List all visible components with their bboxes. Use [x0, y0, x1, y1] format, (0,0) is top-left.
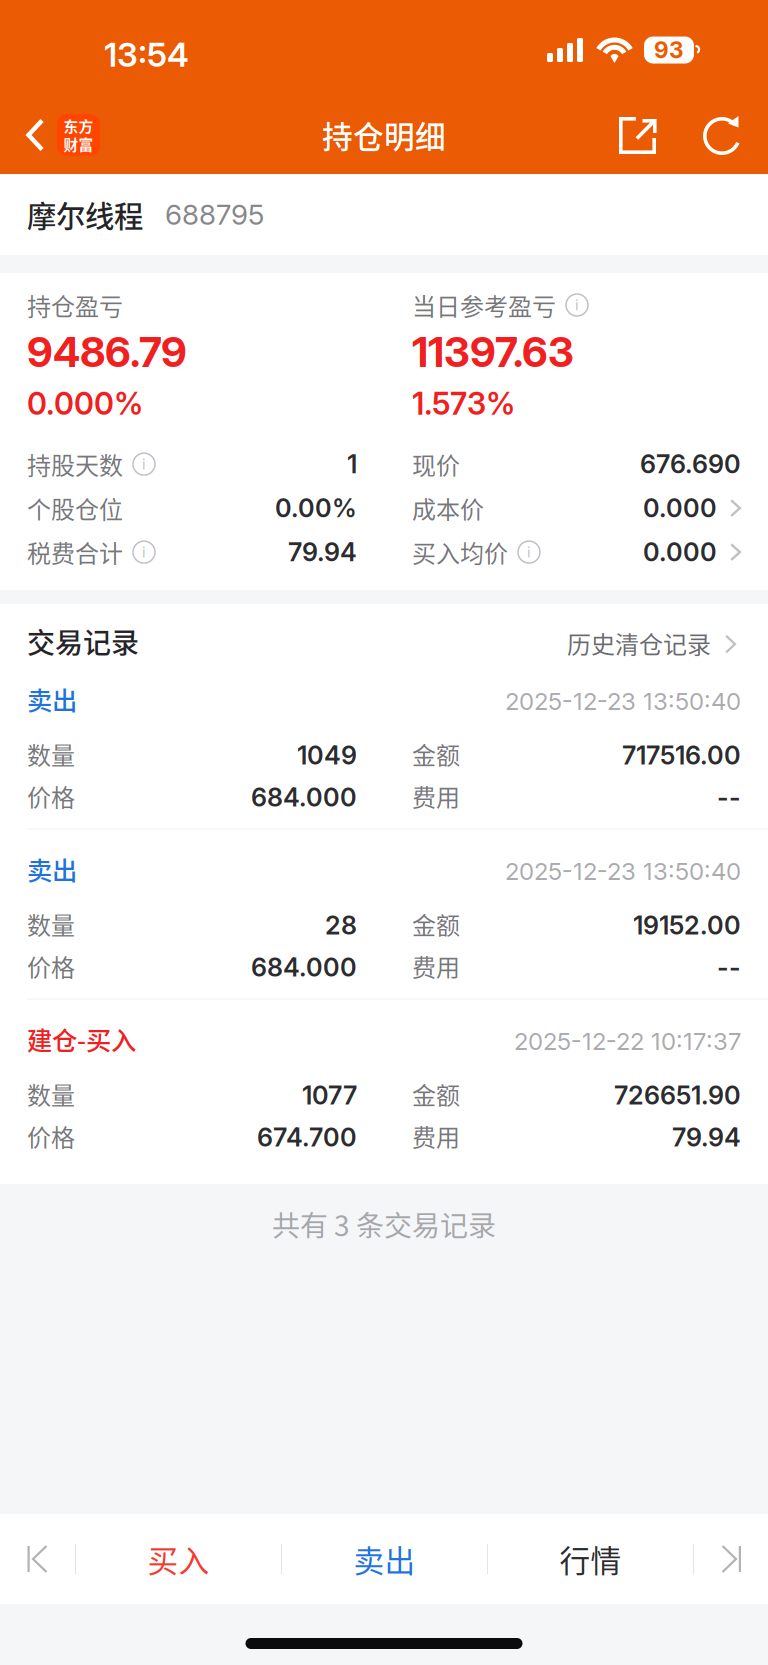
staticText: 行情: [559, 1537, 621, 1581]
staticText: 717516.00: [622, 740, 741, 771]
staticText: 684.000: [251, 952, 357, 983]
staticText: 2025-12-22 10:17:37: [514, 1027, 741, 1056]
button[interactable]: 历史清仓记录: [567, 626, 741, 661]
staticText: 买入均价: [412, 535, 508, 569]
staticText: 684.000: [251, 782, 357, 813]
staticText: 卖出: [27, 681, 77, 717]
staticText: 1: [347, 449, 357, 479]
button[interactable]: 下一只: [694, 1514, 767, 1604]
button[interactable]: 上一只: [1, 1514, 75, 1604]
staticText: 金额: [412, 907, 460, 941]
staticText: 688795: [165, 198, 264, 231]
staticText: 数量: [27, 1077, 75, 1111]
staticText: 个股仓位: [27, 491, 123, 525]
staticText: 79.94: [288, 537, 357, 567]
button[interactable]: 返回: [0, 96, 100, 174]
staticText: 历史清仓记录: [567, 626, 711, 661]
staticText: 726651.90: [614, 1080, 741, 1111]
staticText: 1077: [302, 1080, 357, 1111]
staticText: i: [142, 543, 146, 561]
staticText: 数量: [27, 737, 75, 771]
staticText: 0.000: [643, 537, 717, 567]
staticText: 现价: [412, 447, 460, 481]
staticText: 79.94: [672, 1122, 741, 1153]
staticText: i: [142, 455, 146, 473]
staticText: 0.00%: [275, 493, 357, 523]
staticText: 0.000%: [27, 385, 143, 422]
staticText: 1049: [297, 740, 357, 771]
staticText: 93: [654, 36, 684, 64]
staticText: 数量: [27, 907, 75, 941]
staticText: 卖出: [27, 851, 77, 887]
staticText: 费用: [412, 1119, 460, 1153]
staticText: --: [717, 952, 741, 983]
staticText: 2025-12-23 13:50:40: [505, 857, 741, 886]
button[interactable]: 分享: [614, 107, 670, 163]
staticText: 交易记录: [27, 621, 139, 662]
staticText: 1.573%: [412, 385, 515, 422]
button[interactable]: 成本价: [412, 486, 741, 530]
staticText: 买入: [147, 1537, 209, 1581]
button[interactable]: 买入均价: [412, 530, 741, 574]
staticText: 持仓盈亏: [27, 288, 123, 322]
staticText: 成本价: [412, 491, 484, 525]
staticText: 13:54: [104, 34, 189, 75]
staticText: i: [527, 543, 531, 561]
button[interactable]: 刷新: [700, 107, 756, 163]
staticText: 金额: [412, 1077, 460, 1111]
button[interactable]: 卖出: [282, 1514, 487, 1604]
staticText: 价格: [27, 779, 75, 813]
staticText: 9486.79: [27, 327, 187, 377]
staticText: 共有 3 条交易记录: [272, 1204, 496, 1244]
staticText: 持仓明细: [322, 113, 446, 157]
button[interactable]: 买入: [76, 1514, 281, 1604]
staticText: 0.000: [643, 493, 717, 523]
staticText: 费用: [412, 779, 460, 813]
staticText: 税费合计: [27, 535, 123, 569]
staticText: 建仓-买入: [27, 1021, 136, 1057]
staticText: 财富: [63, 133, 93, 155]
staticText: 674.700: [257, 1122, 357, 1153]
staticText: 费用: [412, 949, 460, 983]
staticText: 11397.63: [412, 327, 574, 377]
staticText: 19152.00: [633, 910, 741, 941]
staticText: 金额: [412, 737, 460, 771]
staticText: 东方: [63, 115, 93, 136]
staticText: 当日参考盈亏: [412, 288, 556, 322]
staticText: 摩尔线程: [27, 193, 143, 236]
staticText: 2025-12-23 13:50:40: [505, 687, 741, 716]
staticText: 28: [325, 910, 357, 941]
staticText: 卖出: [353, 1537, 415, 1581]
staticText: i: [575, 296, 579, 314]
staticText: 持股天数: [27, 447, 123, 481]
staticText: --: [717, 782, 741, 813]
staticText: 价格: [27, 1119, 75, 1153]
staticText: 676.690: [640, 449, 741, 479]
button[interactable]: 行情: [488, 1514, 693, 1604]
staticText: 价格: [27, 949, 75, 983]
